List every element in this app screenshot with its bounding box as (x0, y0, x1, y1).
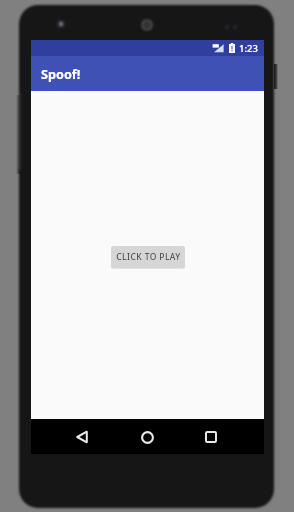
button[interactable]: Recent apps (197, 423, 225, 451)
button[interactable]: CLICK TO PLAY (111, 246, 185, 268)
staticText: CLICK TO PLAY (116, 251, 181, 263)
staticText: 1:23 (239, 42, 258, 55)
button[interactable]: Home (133, 423, 161, 451)
button[interactable]: Back (68, 423, 96, 451)
staticText: Spoof! (41, 65, 81, 82)
